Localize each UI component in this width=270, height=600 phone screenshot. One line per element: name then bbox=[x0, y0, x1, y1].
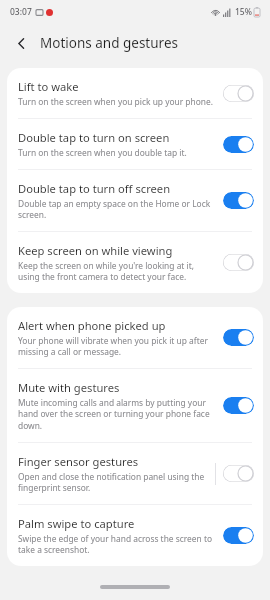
staticText: 03:07 bbox=[10, 6, 32, 18]
button[interactable]: Double tap to turn on screen bbox=[7, 119, 263, 169]
staticText: Keep screen on while viewing bbox=[18, 243, 173, 258]
button[interactable]: Palm swipe to capture bbox=[7, 505, 263, 566]
button[interactable]: Toggle on bbox=[223, 329, 254, 346]
staticText: Double tap an empty space on the Home or… bbox=[18, 198, 215, 220]
staticText: Your phone will vibrate when you pick it… bbox=[18, 335, 215, 357]
button[interactable]: Toggle off bbox=[223, 254, 254, 271]
button[interactable]: Keep screen on while viewing bbox=[7, 232, 263, 293]
staticText: Turn on the screen when you pick up your… bbox=[18, 96, 213, 107]
staticText: Alert when phone picked up bbox=[18, 318, 166, 333]
staticText: Motions and gestures bbox=[40, 34, 178, 52]
staticText: Keep the screen on while you're looking … bbox=[18, 260, 215, 282]
staticText: Mute incoming calls and alarms by puttin… bbox=[18, 397, 215, 431]
button[interactable]: Mute with gestures bbox=[7, 369, 263, 442]
button[interactable]: Finger sensor gestures bbox=[7, 443, 263, 504]
button[interactable]: Toggle off bbox=[223, 85, 254, 102]
staticText: 15% bbox=[235, 6, 252, 18]
button[interactable]: Lift to wake bbox=[7, 68, 263, 118]
staticText: Mute with gestures bbox=[18, 380, 120, 395]
staticText: Double tap to turn on screen bbox=[18, 130, 170, 145]
button[interactable]: Toggle off bbox=[223, 465, 254, 482]
button[interactable]: Toggle on bbox=[223, 136, 254, 153]
staticText: Open and close the notification panel us… bbox=[18, 471, 207, 493]
button[interactable]: Toggle on bbox=[223, 192, 254, 209]
staticText: Turn on the screen when you double tap i… bbox=[18, 147, 187, 158]
button[interactable]: Double tap to turn off screen bbox=[7, 170, 263, 231]
staticText: Lift to wake bbox=[18, 79, 79, 94]
button[interactable]: Back bbox=[6, 28, 36, 58]
button[interactable]: Toggle on bbox=[223, 527, 254, 544]
staticText: Finger sensor gestures bbox=[18, 454, 139, 469]
staticText: Double tap to turn off screen bbox=[18, 181, 171, 196]
button[interactable]: Toggle on bbox=[223, 397, 254, 414]
staticText: Palm swipe to capture bbox=[18, 516, 135, 531]
staticText: Swipe the edge of your hand across the s… bbox=[18, 533, 215, 555]
button[interactable]: Alert when phone picked up bbox=[7, 307, 263, 368]
